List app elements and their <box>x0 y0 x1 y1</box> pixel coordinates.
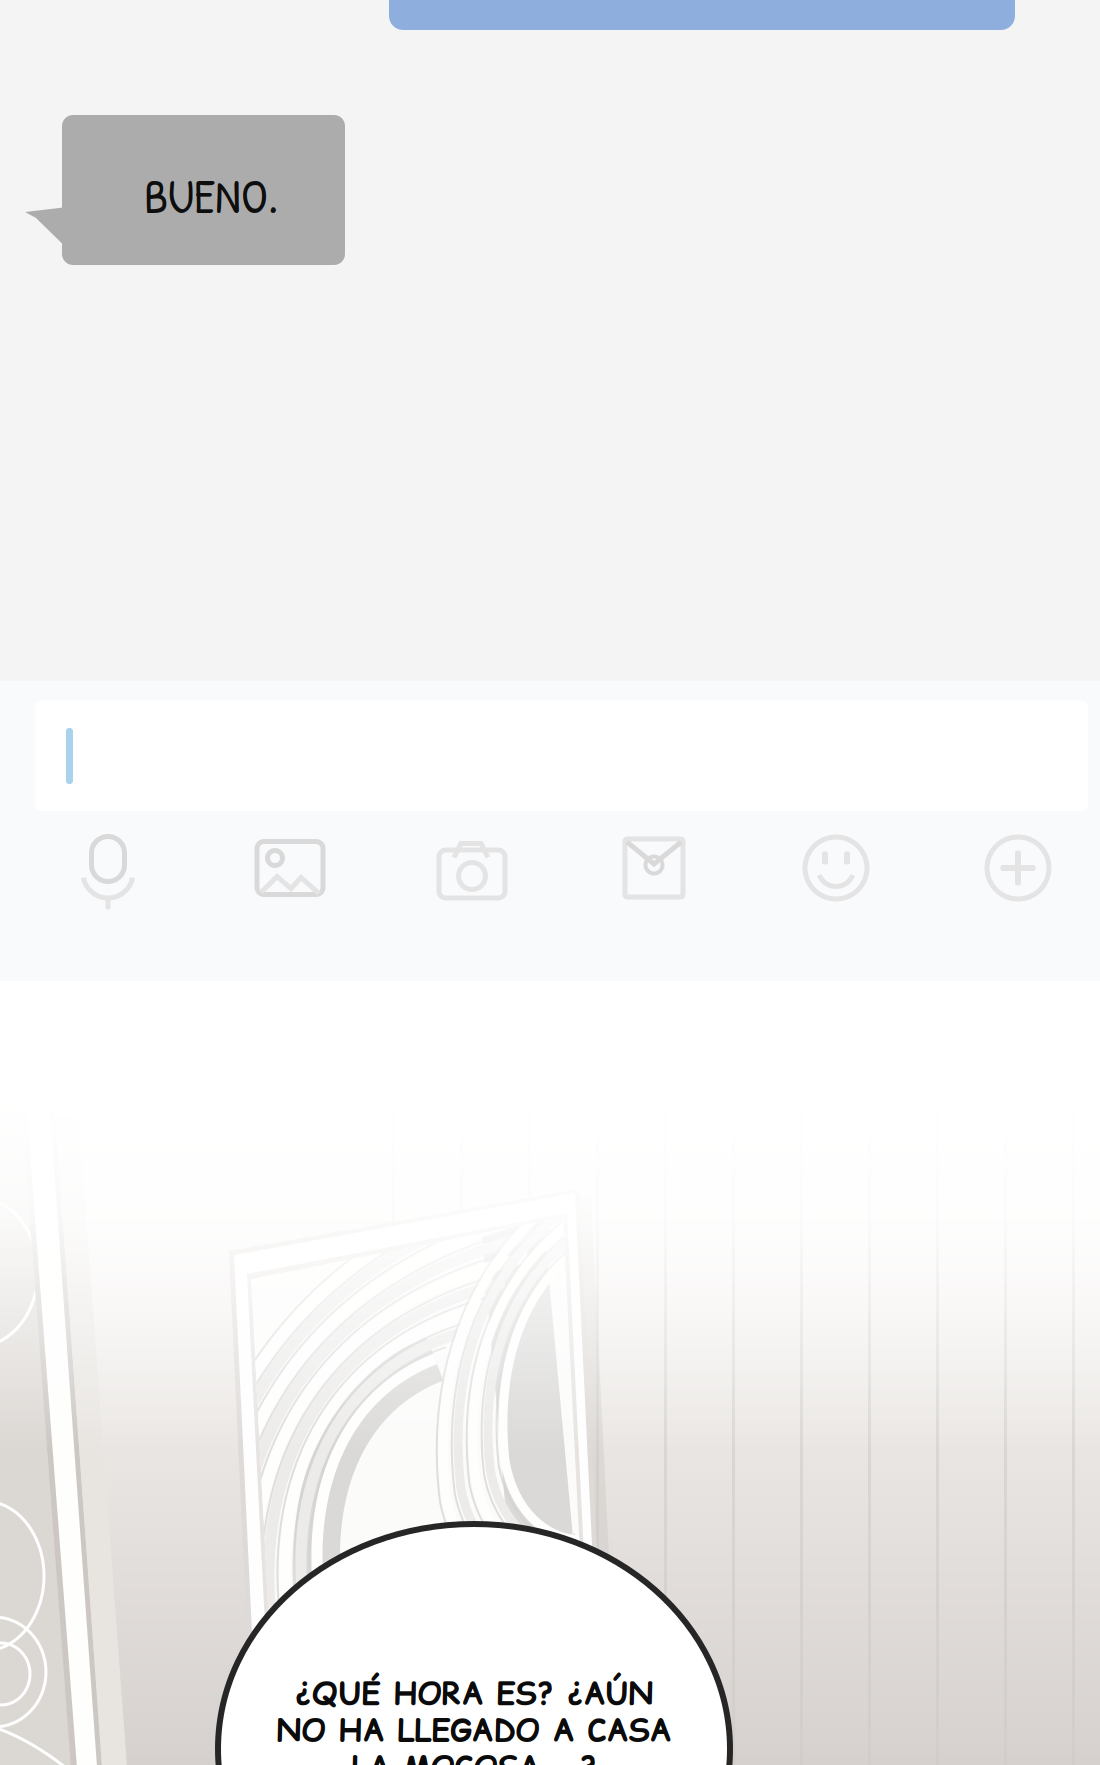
button[interactable]: Emoji <box>745 823 927 913</box>
button[interactable]: Add <box>927 823 1100 913</box>
button[interactable]: Mail <box>563 823 745 913</box>
button[interactable]: Photos <box>199 823 381 913</box>
staticText: NO HA LLEGADO A CASA <box>276 1709 671 1752</box>
button[interactable]: Voice message <box>17 823 199 913</box>
staticText: LA MOCOSA...? <box>351 1746 596 1765</box>
button[interactable]: Camera <box>381 823 563 913</box>
staticText: ¿QUÉ HORA ES? ¿AÚN <box>294 1672 653 1715</box>
staticText: BUENO. <box>144 163 278 228</box>
